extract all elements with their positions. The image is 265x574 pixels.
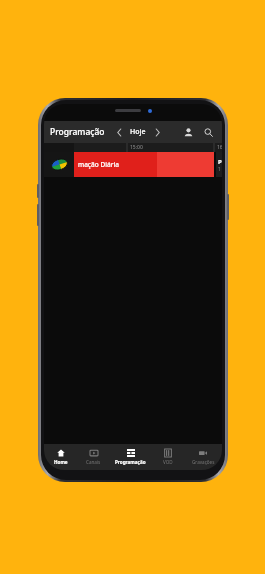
staticText: Programação: [115, 459, 146, 465]
staticText: Canais: [86, 459, 101, 465]
staticText: VOD: [163, 459, 173, 465]
button[interactable]: Hoje: [125, 127, 151, 137]
staticText: 16: [218, 166, 222, 172]
staticText: Pr: [218, 158, 222, 166]
button[interactable]: VOD: [151, 444, 184, 470]
staticText: Programação: [50, 126, 105, 138]
button[interactable]: Conta: [180, 124, 196, 140]
button[interactable]: Gravações: [184, 444, 222, 470]
staticText: 16:: [217, 144, 222, 151]
button[interactable]: Pr: [216, 152, 222, 177]
button[interactable]: Próximo dia: [151, 126, 163, 138]
button[interactable]: mação Diária: [74, 152, 157, 177]
staticText: mação Diária: [78, 160, 119, 169]
button[interactable]: Buscar: [200, 124, 216, 140]
button[interactable]: Dia anterior: [113, 126, 125, 138]
staticText: 15:00: [130, 144, 143, 151]
staticText: Hoje: [130, 127, 146, 137]
button[interactable]: Canais: [77, 444, 110, 470]
staticText: Home: [54, 459, 68, 465]
button[interactable]: Canal Globo: [44, 152, 74, 177]
button[interactable]: Programação: [110, 444, 151, 470]
staticText: Gravações: [192, 459, 215, 465]
button[interactable]: Home: [44, 444, 77, 470]
